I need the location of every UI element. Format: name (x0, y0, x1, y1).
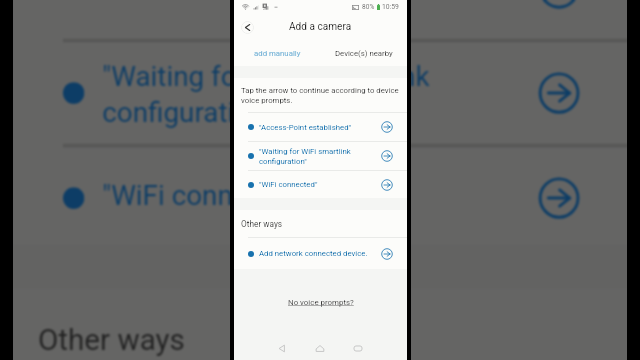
staticText: 80% (362, 3, 375, 11)
staticText: Tap the arrow to continue according to d… (241, 86, 399, 105)
button[interactable]: "Waiting for WiFi smartlink configuratio… (234, 142, 407, 170)
button[interactable]: "Waiting for WiFi smartlink configuratio… (13, 42, 630, 144)
button[interactable]: "Access-Point established" (13, 0, 630, 39)
staticText: "Access-Point established" (102, 0, 527, 6)
staticText: "Waiting for WiFi smartlink configuratio… (102, 60, 527, 129)
staticText: Other ways (38, 321, 188, 357)
button[interactable]: Navigate back (241, 21, 254, 34)
staticText: "WiFi connected" (102, 180, 527, 213)
button[interactable]: "WiFi connected" (234, 171, 407, 198)
staticText: add manually (254, 49, 301, 58)
button[interactable]: Home (309, 337, 331, 360)
staticText: No voice prompts? (288, 298, 354, 307)
staticText: "Waiting for WiFi smartlink configuratio… (259, 147, 378, 166)
staticText: Device(s) nearby (335, 49, 393, 58)
button[interactable]: "WiFi connected" (13, 147, 630, 245)
staticText: Add a camera (289, 21, 352, 33)
staticText: "WiFi connected" (259, 180, 378, 189)
staticText: 10:59 (382, 3, 399, 11)
staticText: "Access-Point established" (259, 123, 378, 132)
button[interactable]: Device(s) nearby (320, 40, 407, 66)
button[interactable]: Recent apps (347, 337, 369, 360)
button[interactable]: Add network connected device. (234, 238, 407, 269)
button[interactable]: add manually (234, 40, 320, 66)
button[interactable]: Back (271, 337, 293, 360)
staticText: Other ways (241, 219, 283, 229)
button[interactable]: No voice prompts? (288, 298, 354, 307)
staticText: Add network connected device. (259, 249, 378, 258)
button[interactable]: "Access-Point established" (234, 113, 407, 141)
